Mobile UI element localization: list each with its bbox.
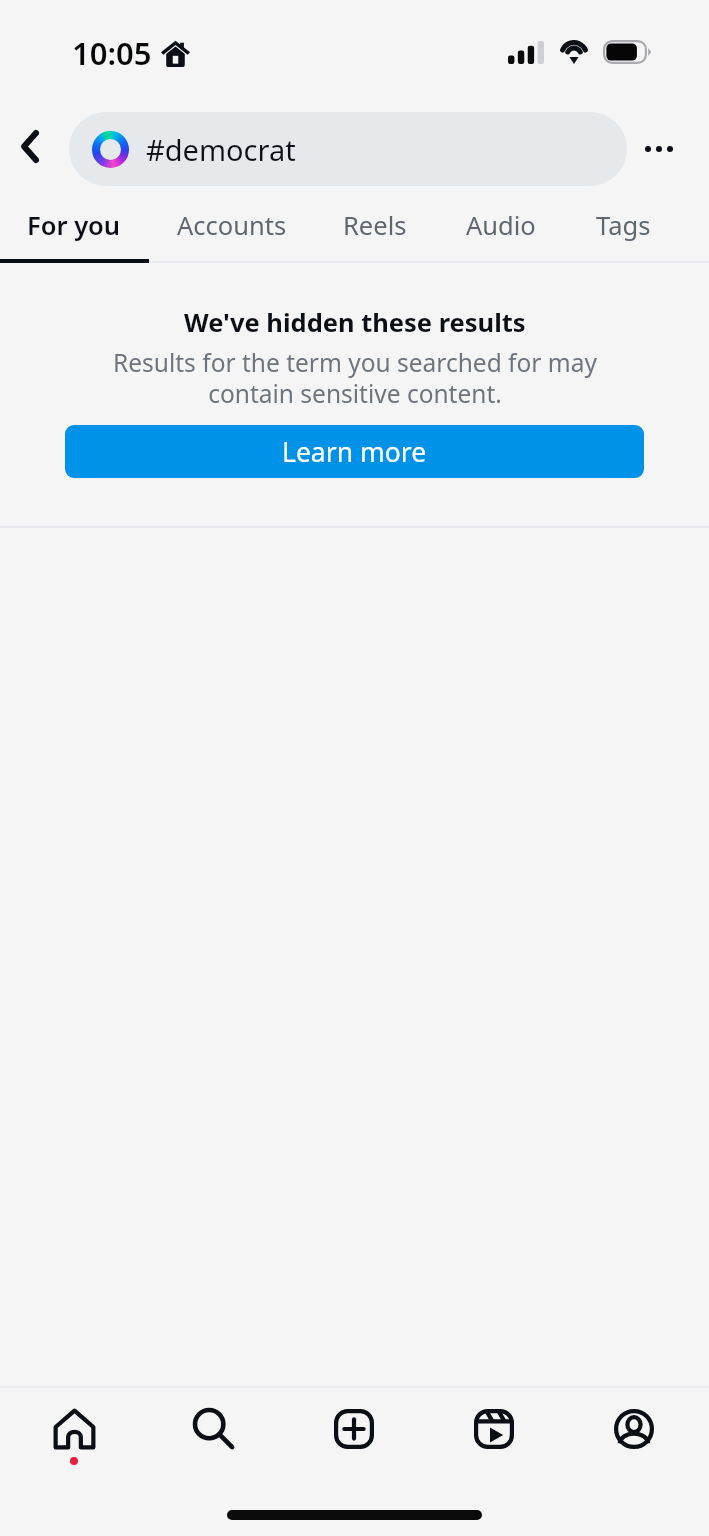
- button[interactable]: #democrat: [69, 112, 627, 186]
- staticText: Reels: [343, 208, 407, 243]
- button[interactable]: Audio: [449, 198, 552, 261]
- staticText: Tags: [596, 208, 651, 243]
- button[interactable]: Search: [154, 1388, 274, 1474]
- staticText: For you: [27, 208, 121, 243]
- staticText: Learn more: [282, 434, 427, 470]
- staticText: We've hidden these results: [184, 305, 526, 340]
- button[interactable]: Back: [0, 116, 60, 176]
- staticText: #democrat: [146, 130, 296, 169]
- button[interactable]: More options: [629, 119, 689, 179]
- button[interactable]: Create: [294, 1388, 414, 1474]
- button[interactable]: Reels: [325, 198, 424, 261]
- button[interactable]: Tags: [578, 198, 669, 261]
- staticText: Audio: [466, 208, 536, 243]
- staticText: Results for the term you searched for ma…: [113, 346, 597, 411]
- staticText: 10:05: [72, 32, 152, 74]
- button[interactable]: Home: [14, 1388, 134, 1474]
- staticText: Accounts: [177, 208, 287, 243]
- button[interactable]: Profile: [574, 1388, 694, 1474]
- button[interactable]: Learn more: [65, 425, 644, 478]
- button[interactable]: Accounts: [158, 198, 306, 261]
- button[interactable]: For you: [12, 198, 136, 261]
- button[interactable]: Reels: [434, 1388, 554, 1474]
